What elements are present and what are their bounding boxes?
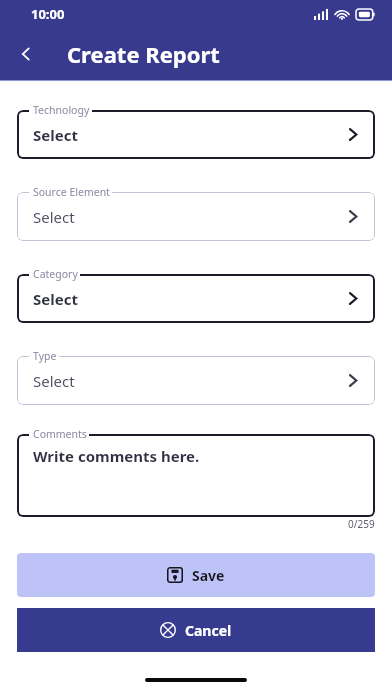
staticText: Select — [33, 371, 75, 391]
staticText: Select — [33, 207, 75, 227]
button[interactable]: Write comments here. — [17, 434, 375, 517]
button[interactable]: Select — [17, 110, 375, 159]
staticText: 10:00 — [31, 5, 65, 23]
button[interactable]: Save — [17, 553, 375, 597]
staticText: 0/259 — [348, 517, 375, 531]
button[interactable]: Select — [17, 274, 375, 323]
button[interactable]: Select — [17, 356, 375, 405]
staticText: Select — [33, 125, 78, 145]
staticText: Type — [33, 349, 57, 363]
staticText: Source Element — [33, 185, 110, 199]
button[interactable]: Select — [17, 192, 375, 241]
button[interactable]: Cancel — [17, 608, 375, 652]
staticText: Comments — [33, 427, 87, 441]
staticText: Create Report — [67, 39, 220, 69]
staticText: Technology — [33, 103, 90, 117]
staticText: Category — [33, 267, 78, 281]
staticText: Save — [192, 566, 225, 585]
staticText: Write comments here. — [33, 446, 200, 466]
staticText: Cancel — [185, 621, 232, 640]
staticText: Select — [33, 289, 78, 309]
button[interactable]: Back — [6, 34, 46, 74]
